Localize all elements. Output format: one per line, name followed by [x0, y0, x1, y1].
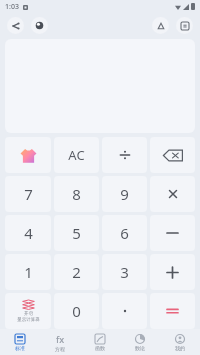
staticText: 数论 — [135, 345, 145, 351]
other: Divide — [118, 148, 132, 162]
button[interactable]: Equals — [150, 293, 195, 329]
button[interactable]: 3 — [102, 254, 147, 290]
button[interactable]: AC — [54, 137, 99, 173]
staticText: 9 — [120, 184, 129, 204]
button[interactable]: 9 — [102, 176, 147, 212]
button[interactable]: Show calculation process — [5, 293, 51, 329]
button[interactable]: 0 — [54, 293, 99, 329]
button[interactable]: 5 — [54, 215, 99, 251]
staticText: 1 — [24, 262, 33, 282]
button[interactable] — [102, 293, 147, 329]
button[interactable]: Theme skin — [5, 137, 51, 173]
staticText: 8 — [72, 184, 81, 204]
staticText: 2 — [72, 262, 81, 282]
staticText: AC — [68, 146, 85, 164]
staticText: 4 — [24, 223, 33, 243]
button[interactable]: History — [176, 17, 193, 34]
staticText: 我的 — [175, 345, 185, 351]
staticText: 方程 — [55, 346, 65, 352]
button[interactable]: Backspace — [150, 137, 195, 173]
button[interactable]: 7 — [5, 176, 51, 212]
button[interactable]: Plus — [150, 254, 195, 290]
button[interactable]: 2 — [54, 254, 99, 290]
staticText: 开启 — [24, 311, 33, 317]
button[interactable]: 函数 — [80, 329, 120, 355]
staticText: 7 — [24, 184, 33, 204]
button[interactable]: Share — [7, 17, 24, 34]
button[interactable]: 标准 — [0, 329, 40, 355]
staticText: 6 — [120, 223, 129, 243]
button[interactable]: fx — [40, 329, 80, 355]
button[interactable]: Divide — [102, 137, 147, 173]
other: Plus — [167, 267, 178, 278]
staticText: 3 — [120, 262, 129, 282]
button[interactable]: 4 — [5, 215, 51, 251]
other: Backspace — [163, 149, 183, 162]
staticText: 5 — [72, 223, 81, 243]
button[interactable]: 我的 — [160, 329, 200, 355]
button[interactable]: Multiply — [150, 176, 195, 212]
staticText: fx — [56, 333, 65, 345]
button[interactable]: 8 — [54, 176, 99, 212]
button[interactable]: Theme — [31, 17, 48, 34]
other: Multiply — [168, 189, 178, 199]
staticText: 函数 — [95, 345, 105, 351]
other: Theme skin — [20, 147, 37, 164]
other: Equals — [167, 307, 178, 315]
staticText: 1:03 — [5, 2, 19, 12]
button[interactable]: 1 — [5, 254, 51, 290]
staticText: 0 — [72, 301, 81, 321]
button[interactable]: 数论 — [120, 329, 160, 355]
other: Minus — [167, 228, 178, 238]
button[interactable]: Font size — [152, 17, 169, 34]
staticText: 标准 — [15, 345, 25, 351]
button[interactable]: Minus — [150, 215, 195, 251]
other: Show calculation process — [17, 299, 40, 323]
staticText: 显示计算器 — [17, 317, 40, 323]
button[interactable]: 6 — [102, 215, 147, 251]
